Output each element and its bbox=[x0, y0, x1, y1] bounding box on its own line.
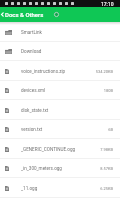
button[interactable]: _11.ogg bbox=[0, 179, 120, 198]
button[interactable]: voice_instructions.zip bbox=[0, 62, 120, 81]
staticText: 534.20KB bbox=[95, 69, 113, 74]
button[interactable]: disk_state.txt bbox=[0, 101, 120, 120]
button[interactable]: _GENERIC_CONTINUE.ogg bbox=[0, 140, 120, 159]
staticText: 6B bbox=[108, 127, 113, 132]
staticText: devices.xml bbox=[21, 88, 103, 93]
staticText: version.txt bbox=[21, 127, 108, 132]
staticText: _11.ogg bbox=[21, 186, 100, 191]
staticText: _GENERIC_CONTINUE.ogg bbox=[21, 147, 100, 152]
staticText: SmartLink bbox=[21, 30, 113, 35]
button[interactable]: Select all bbox=[52, 10, 61, 19]
staticText: 7.98KB bbox=[100, 147, 113, 152]
staticText: 180B bbox=[103, 88, 113, 93]
button[interactable]: Download bbox=[0, 42, 120, 61]
staticText: Docs & Others bbox=[5, 11, 44, 18]
staticText: Download bbox=[21, 49, 113, 54]
staticText: disk_state.txt bbox=[21, 108, 113, 113]
button[interactable]: devices.xml bbox=[0, 81, 120, 100]
button[interactable]: Back bbox=[0, 7, 5, 22]
button[interactable]: _in_300_meters.ogg bbox=[0, 159, 120, 178]
staticText: voice_instructions.zip bbox=[21, 69, 95, 74]
button[interactable]: SmartLink bbox=[0, 23, 120, 42]
staticText: 6.25KB bbox=[100, 186, 113, 191]
button[interactable]: version.txt bbox=[0, 120, 120, 139]
staticText: 17:10 bbox=[101, 1, 114, 7]
staticText: 8.57KB bbox=[100, 166, 113, 171]
staticText: _in_300_meters.ogg bbox=[21, 166, 100, 171]
